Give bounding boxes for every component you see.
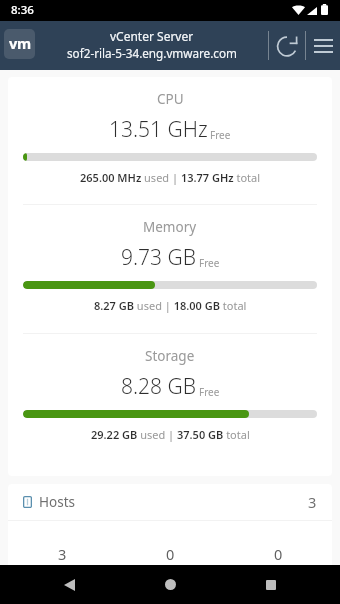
button[interactable]: Hosts: [8, 484, 332, 520]
staticText: 3: [58, 544, 67, 564]
staticText: 3: [308, 492, 317, 512]
staticText: Hosts: [39, 493, 75, 511]
staticText: CPU: [157, 90, 184, 108]
staticText: Free: [199, 385, 220, 399]
staticText: 29.22 GB used | 37.50 GB total: [91, 427, 250, 442]
staticText: Free: [199, 256, 220, 270]
staticText: 8.28 GB: [121, 372, 197, 401]
staticText: 0: [274, 544, 283, 564]
staticText: Storage: [145, 347, 195, 365]
button[interactable]: Recent apps: [239, 565, 303, 604]
staticText: 8.27 GB used | 18.00 GB total: [94, 298, 247, 313]
button[interactable]: Menu: [306, 21, 340, 70]
button[interactable]: 0: [116, 521, 224, 589]
staticText: Free: [210, 128, 231, 142]
staticText: vm: [9, 33, 31, 53]
button[interactable]: Back: [37, 565, 101, 604]
button[interactable]: VMware: [4, 29, 35, 59]
staticText: 0: [166, 544, 175, 564]
staticText: 8:36: [11, 2, 34, 18]
staticText: 13.51 GHz: [109, 115, 208, 144]
button[interactable]: 0: [224, 521, 332, 589]
staticText: Memory: [143, 218, 197, 236]
staticText: sof2-rila-5-34.eng.vmware.com: [67, 45, 237, 61]
button[interactable]: Home: [138, 565, 202, 604]
staticText: 9.73 GB: [121, 243, 197, 272]
button[interactable]: Refresh: [269, 21, 305, 70]
staticText: 265.00 MHz used | 13.77 GHz total: [80, 170, 261, 185]
button[interactable]: 3: [8, 521, 116, 589]
staticText: vCenter Server: [110, 28, 194, 44]
